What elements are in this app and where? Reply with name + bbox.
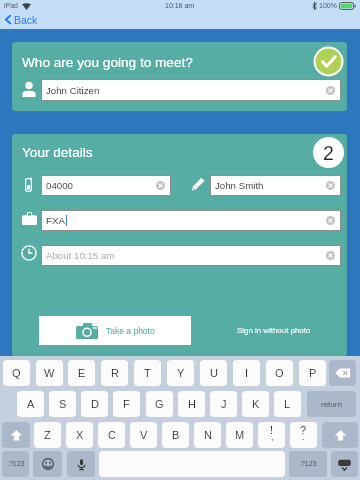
button[interactable]: N <box>194 422 221 448</box>
staticText: 2 <box>323 142 334 164</box>
staticText: P <box>309 367 317 379</box>
staticText: ? <box>300 424 307 436</box>
staticText: .?123 <box>7 460 25 468</box>
button[interactable]: Y <box>167 360 194 386</box>
staticText: S <box>59 398 67 410</box>
button[interactable]: S <box>49 391 76 417</box>
button[interactable]: M <box>226 422 253 448</box>
staticText: About 10:15 am <box>46 250 115 261</box>
staticText: Your details <box>22 145 93 160</box>
button[interactable]: J <box>210 391 237 417</box>
button[interactable]: T <box>134 360 161 386</box>
staticText: John Smith <box>215 180 264 191</box>
staticText: John Citizen <box>46 85 100 96</box>
button[interactable]: Shift <box>2 422 30 448</box>
staticText: .?123 <box>299 460 317 468</box>
button[interactable]: Dictation <box>67 451 95 477</box>
button[interactable]: P <box>299 360 326 386</box>
button[interactable]: Hide keyboard <box>331 451 358 477</box>
button[interactable]: A <box>17 391 44 417</box>
staticText: 100% <box>319 2 337 10</box>
staticText: R <box>111 367 119 379</box>
staticText: L <box>284 398 291 410</box>
button[interactable]: John Citizen <box>42 80 340 100</box>
staticText: Q <box>12 367 21 379</box>
button[interactable]: L <box>274 391 301 417</box>
button[interactable]: B <box>162 422 189 448</box>
staticText: . <box>302 432 305 442</box>
button[interactable]: K <box>242 391 269 417</box>
button[interactable]: R <box>101 360 128 386</box>
staticText: X <box>76 429 84 441</box>
button[interactable]: Back <box>4 13 38 26</box>
button[interactable]: F <box>113 391 140 417</box>
button[interactable]: Z <box>34 422 61 448</box>
button[interactable]: John Smith <box>211 176 340 195</box>
button[interactable]: Backspace <box>329 360 356 386</box>
staticText: FXA <box>46 215 65 226</box>
staticText: ! <box>270 424 274 436</box>
staticText: U <box>210 367 218 379</box>
button[interactable]: Shift <box>322 422 358 448</box>
button[interactable]: Step 2 <box>313 137 344 168</box>
button[interactable]: O <box>266 360 293 386</box>
staticText: Back <box>14 14 38 26</box>
staticText: H <box>188 398 196 410</box>
button[interactable]: FXA <box>42 211 340 230</box>
staticText: D <box>91 398 99 410</box>
button[interactable]: Emoji <box>33 451 62 477</box>
button[interactable]: V <box>130 422 157 448</box>
button[interactable]: About 10:15 am <box>42 246 340 265</box>
button[interactable]: X <box>66 422 93 448</box>
staticText: K <box>252 398 260 410</box>
staticText: T <box>144 367 151 379</box>
staticText: A <box>27 398 35 410</box>
button[interactable]: ? <box>290 422 317 448</box>
staticText: G <box>155 398 164 410</box>
staticText: M <box>235 429 245 441</box>
staticText: W <box>44 367 55 379</box>
staticText: 10:16 am <box>165 2 195 10</box>
staticText: Z <box>44 429 51 441</box>
button[interactable]: H <box>178 391 205 417</box>
button[interactable]: Step complete <box>313 46 344 77</box>
button[interactable]: E <box>68 360 95 386</box>
button[interactable]: Q <box>3 360 30 386</box>
staticText: B <box>172 429 180 441</box>
button[interactable]: G <box>146 391 173 417</box>
button[interactable]: C <box>98 422 125 448</box>
button[interactable]: Numbers and symbols 2 <box>289 451 327 477</box>
staticText: return <box>321 400 342 409</box>
staticText: N <box>204 429 212 441</box>
staticText: J <box>221 398 227 410</box>
staticText: , <box>271 432 274 442</box>
button[interactable]: I <box>233 360 260 386</box>
staticText: 04000 <box>46 180 73 191</box>
staticText: E <box>78 367 86 379</box>
button[interactable]: D <box>81 391 108 417</box>
button[interactable]: W <box>36 360 63 386</box>
button[interactable]: U <box>200 360 227 386</box>
button[interactable]: Numbers and symbols <box>2 451 29 477</box>
staticText: Who are you going to meet? <box>22 55 193 70</box>
button[interactable]: Take a photo <box>39 316 191 345</box>
staticText: V <box>140 429 148 441</box>
staticText: F <box>123 398 130 410</box>
staticText: O <box>275 367 284 379</box>
staticText: Sign in without photo <box>237 326 311 335</box>
button[interactable]: return <box>307 391 356 417</box>
staticText: iPad <box>4 2 19 10</box>
staticText: Y <box>177 367 185 379</box>
staticText: Take a photo <box>106 326 155 335</box>
button[interactable]: Sign in without photo <box>209 316 339 345</box>
staticText: I <box>245 367 249 379</box>
staticText: C <box>108 429 116 441</box>
button[interactable]: 04000 <box>42 176 170 195</box>
button[interactable]: ! <box>258 422 285 448</box>
